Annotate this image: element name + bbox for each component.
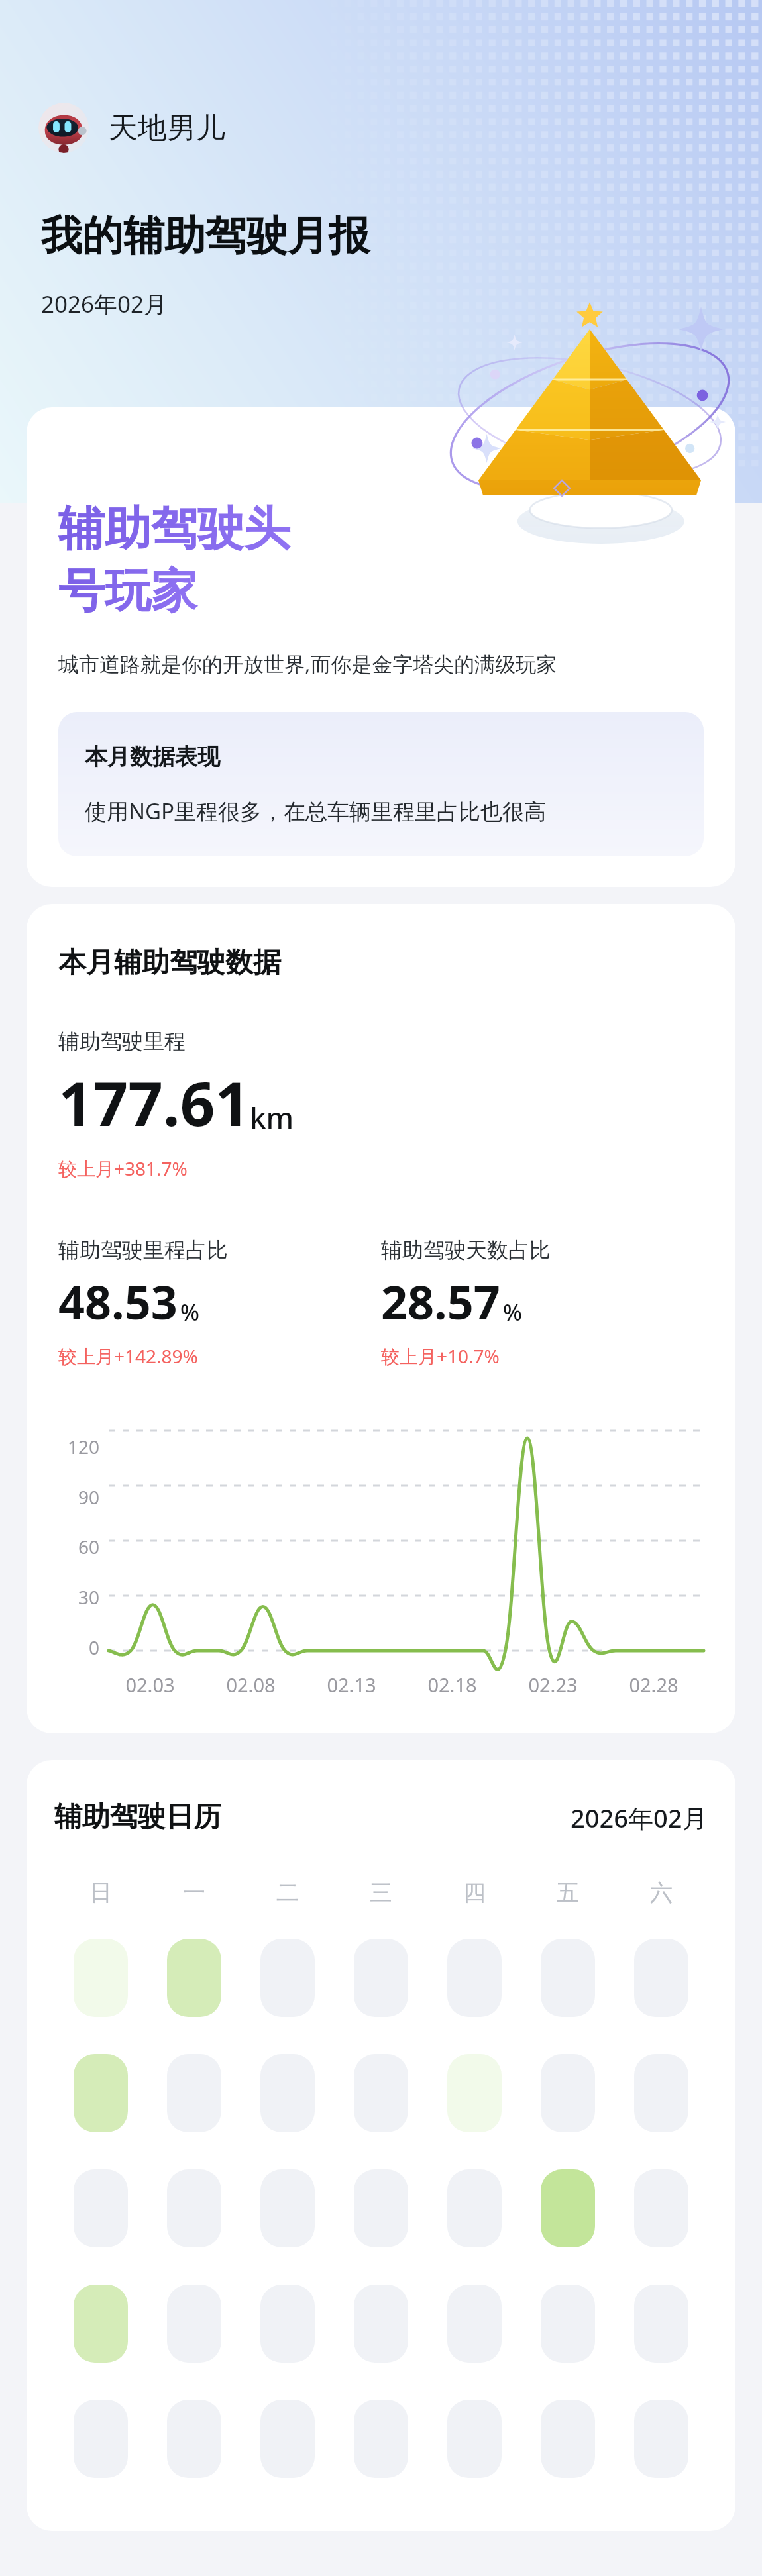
staticText: 120 [67, 1434, 99, 1459]
button[interactable] [74, 2169, 128, 2247]
staticText: 02.28 [629, 1672, 679, 1698]
button[interactable]: 辅助驾驶日历 [27, 1760, 735, 2531]
staticText: 使用NGP里程很多，在总车辆里程里占比也很高 [85, 796, 547, 826]
button[interactable] [447, 1939, 502, 2017]
button[interactable] [167, 2054, 221, 2132]
staticText: 辅助驾驶天数占比 [381, 1237, 551, 1263]
button[interactable] [167, 2400, 221, 2478]
button[interactable] [634, 2169, 688, 2247]
staticText: 三 [370, 1879, 392, 1907]
staticText: 号玩家 [58, 562, 197, 621]
button[interactable] [447, 2169, 502, 2247]
button[interactable] [260, 2169, 315, 2247]
staticText: 五 [557, 1879, 579, 1907]
button[interactable] [260, 2285, 315, 2363]
staticText: 2026年02月 [41, 288, 168, 320]
staticText: 较上月+381.7% [58, 1156, 188, 1181]
button[interactable] [354, 2169, 408, 2247]
button[interactable] [447, 2285, 502, 2363]
staticText: 60 [78, 1534, 99, 1559]
button[interactable] [74, 2054, 128, 2132]
staticText: 二 [276, 1879, 299, 1907]
button[interactable] [634, 2285, 688, 2363]
button[interactable] [354, 2054, 408, 2132]
staticText: 辅助驾驶头 [58, 500, 290, 558]
button[interactable] [74, 1939, 128, 2017]
staticText: 02.23 [528, 1672, 578, 1698]
button[interactable] [74, 2285, 128, 2363]
staticText: 02.18 [427, 1672, 477, 1698]
button[interactable] [260, 2400, 315, 2478]
button[interactable] [167, 1939, 221, 2017]
button[interactable] [447, 2054, 502, 2132]
button[interactable] [447, 2400, 502, 2478]
staticText: 90 [78, 1484, 99, 1510]
staticText: 本月辅助驾驶数据 [58, 945, 281, 980]
staticText: 城市道路就是你的开放世界,而你是金字塔尖的满级玩家 [58, 650, 557, 678]
button[interactable]: 本月辅助驾驶数据 [27, 904, 735, 1733]
staticText: 02.03 [125, 1672, 175, 1698]
button[interactable] [634, 2054, 688, 2132]
button[interactable] [354, 2285, 408, 2363]
button[interactable]: 本月数据表现 [58, 712, 704, 856]
staticText: 较上月+10.7% [381, 1343, 500, 1368]
button[interactable] [541, 1939, 595, 2017]
button[interactable]: 辅助驾驶头 [27, 407, 735, 887]
other: 用户头像 [38, 103, 89, 153]
staticText: 02.08 [226, 1672, 276, 1698]
button[interactable] [354, 2400, 408, 2478]
button[interactable]: 辅助驾驶天数占比 [381, 1237, 704, 1368]
button[interactable] [541, 2169, 595, 2247]
staticText: 本月数据表现 [85, 743, 220, 771]
staticText: 辅助驾驶里程占比 [58, 1237, 228, 1263]
button[interactable] [634, 1939, 688, 2017]
staticText: 四 [463, 1879, 486, 1907]
staticText: 0 [88, 1635, 99, 1660]
staticText: 28.57 [381, 1270, 500, 1333]
staticText: 辅助驾驶里程 [58, 1028, 186, 1055]
staticText: % [503, 1297, 522, 1327]
staticText: % [180, 1297, 199, 1327]
staticText: 天地男儿 [109, 110, 225, 146]
button[interactable] [167, 2285, 221, 2363]
button[interactable] [260, 1939, 315, 2017]
staticText: 2026年02月 [571, 1800, 708, 1835]
button[interactable] [74, 2400, 128, 2478]
staticText: 一 [183, 1879, 205, 1907]
staticText: 30 [78, 1584, 99, 1610]
staticText: 辅助驾驶日历 [54, 1800, 221, 1835]
button[interactable]: 用户头像 [38, 103, 235, 153]
staticText: 48.53 [58, 1270, 178, 1333]
button[interactable] [634, 2400, 688, 2478]
staticText: km [250, 1098, 294, 1137]
staticText: 177.61 [58, 1061, 250, 1144]
button[interactable] [167, 2169, 221, 2247]
button[interactable] [541, 2054, 595, 2132]
staticText: 我的辅助驾驶月报 [41, 210, 370, 262]
button[interactable] [260, 2054, 315, 2132]
staticText: 日 [89, 1879, 112, 1907]
staticText: 02.13 [327, 1672, 376, 1698]
button[interactable] [541, 2400, 595, 2478]
button[interactable] [354, 1939, 408, 2017]
staticText: 六 [650, 1879, 673, 1907]
button[interactable]: 辅助驾驶里程占比 [58, 1237, 381, 1368]
staticText: 较上月+142.89% [58, 1343, 198, 1368]
button[interactable] [541, 2285, 595, 2363]
